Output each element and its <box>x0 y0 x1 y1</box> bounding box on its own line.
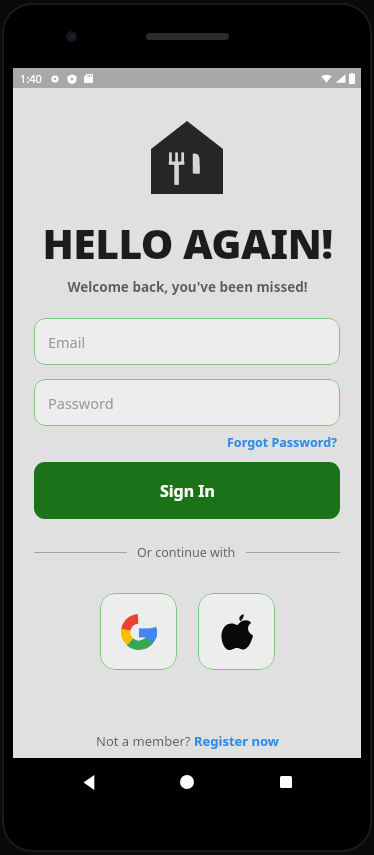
staticText: Sign In <box>160 480 215 502</box>
staticText: Email <box>48 332 86 352</box>
button[interactable]: Forgot Password? <box>225 432 340 453</box>
staticText: 1:40 <box>20 71 42 86</box>
button[interactable]: Back <box>66 759 112 805</box>
staticText: Register now <box>194 732 279 750</box>
button[interactable]: Email <box>34 318 340 365</box>
staticText: HELLO AGAIN! <box>42 215 333 271</box>
button[interactable]: Register now <box>194 732 279 750</box>
button[interactable]: Sign In <box>34 462 340 519</box>
button[interactable]: Recent apps <box>263 759 309 805</box>
button[interactable]: Password <box>34 379 340 426</box>
button[interactable]: Sign in with Google <box>100 593 177 670</box>
staticText: Not a member? <box>96 732 194 750</box>
staticText: Welcome back, you've been missed! <box>67 278 308 296</box>
button[interactable]: Sign in with Apple <box>198 593 275 670</box>
staticText: Forgot Password? <box>227 434 338 451</box>
button[interactable]: Home <box>164 759 210 805</box>
staticText: Password <box>48 393 114 413</box>
staticText: Or continue with <box>137 544 236 561</box>
